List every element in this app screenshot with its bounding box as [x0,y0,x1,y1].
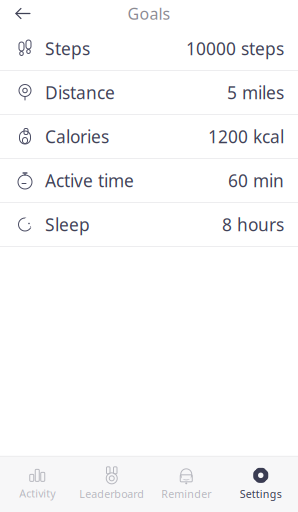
staticText: Sleep [45,213,90,236]
staticText: Active time [45,169,134,192]
button[interactable]: Active time [0,159,298,203]
staticText: Reminder [161,487,211,501]
button[interactable]: Calories [0,115,298,159]
staticText: 10000 steps [186,37,284,60]
staticText: Goals [127,3,170,24]
button[interactable]: Steps [0,27,298,71]
staticText: Activity [19,486,55,500]
staticText: Calories [45,125,109,148]
staticText: Steps [45,37,90,60]
button[interactable]: Activity [0,461,74,506]
button[interactable]: Back [12,2,34,24]
button[interactable]: Reminder [149,461,223,507]
staticText: Leaderboard [79,487,144,501]
button[interactable]: Settings [223,461,298,507]
button[interactable]: Distance [0,71,298,115]
staticText: 8 hours [222,213,284,236]
staticText: Distance [45,81,115,104]
staticText: 5 miles [227,81,284,104]
staticText: Settings [240,487,282,501]
button[interactable]: Leaderboard [74,461,149,507]
staticText: 60 min [228,169,284,192]
staticText: 1200 kcal [208,125,284,148]
button[interactable]: Sleep [0,203,298,247]
